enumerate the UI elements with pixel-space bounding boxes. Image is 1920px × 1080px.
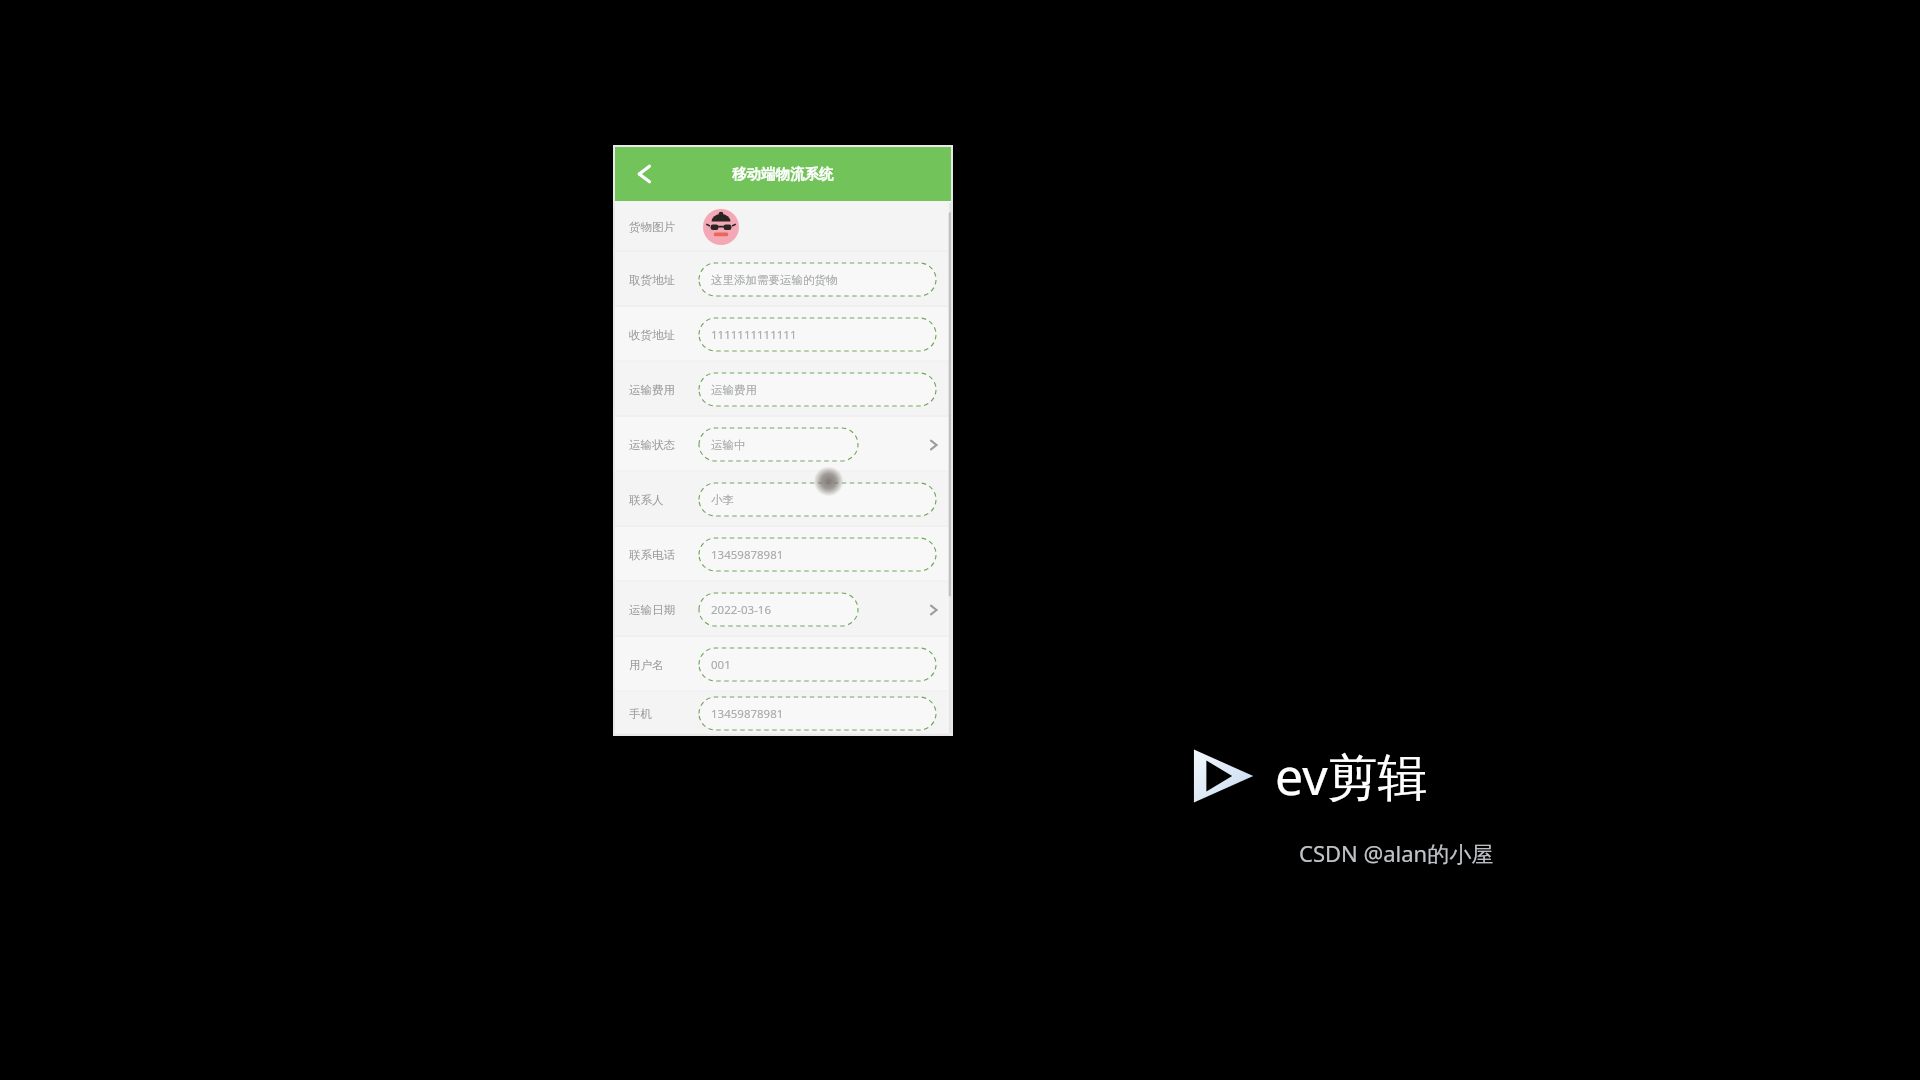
staticText: 小李: [711, 493, 734, 507]
staticText: 货物图片: [629, 220, 675, 234]
staticText: ev剪辑: [1275, 742, 1428, 810]
button[interactable]: 联系电话: [614, 527, 952, 582]
staticText: 运输费用: [711, 383, 757, 397]
staticText: 运输中: [711, 438, 746, 452]
staticText: 取货地址: [629, 273, 675, 287]
button[interactable]: 运输日期: [614, 582, 952, 637]
staticText: 13459878981: [711, 547, 784, 563]
button[interactable]: 取货地址: [614, 252, 952, 307]
staticText: 手机: [629, 707, 652, 721]
staticText: 联系人: [629, 493, 664, 507]
staticText: 001: [711, 657, 731, 673]
staticText: 用户名: [629, 658, 664, 672]
staticText: 运输费用: [629, 383, 675, 397]
staticText: 这里添加需要运输的货物: [711, 273, 838, 287]
staticText: 移动端物流系统: [732, 165, 834, 183]
staticText: 运输状态: [629, 438, 675, 452]
button[interactable]: 运输费用: [614, 362, 952, 417]
button[interactable]: Open picker: [926, 601, 944, 619]
staticText: 1111111111111: [711, 327, 797, 343]
button[interactable]: 联系人: [614, 472, 952, 527]
button[interactable]: 手机: [614, 692, 952, 735]
staticText: 收货地址: [629, 328, 675, 342]
staticText: 运输日期: [629, 603, 675, 617]
staticText: 13459878981: [711, 706, 784, 722]
staticText: 2022-03-16: [711, 602, 772, 618]
button[interactable]: 收货地址: [614, 307, 952, 362]
button[interactable]: 运输状态: [614, 417, 952, 472]
button[interactable]: Back: [628, 159, 658, 189]
button[interactable]: Open picker: [926, 436, 944, 454]
staticText: CSDN @alan的小屋: [1299, 838, 1494, 868]
button[interactable]: 货物图片: [614, 201, 952, 252]
button[interactable]: 用户名: [614, 637, 952, 692]
staticText: 联系电话: [629, 548, 675, 562]
